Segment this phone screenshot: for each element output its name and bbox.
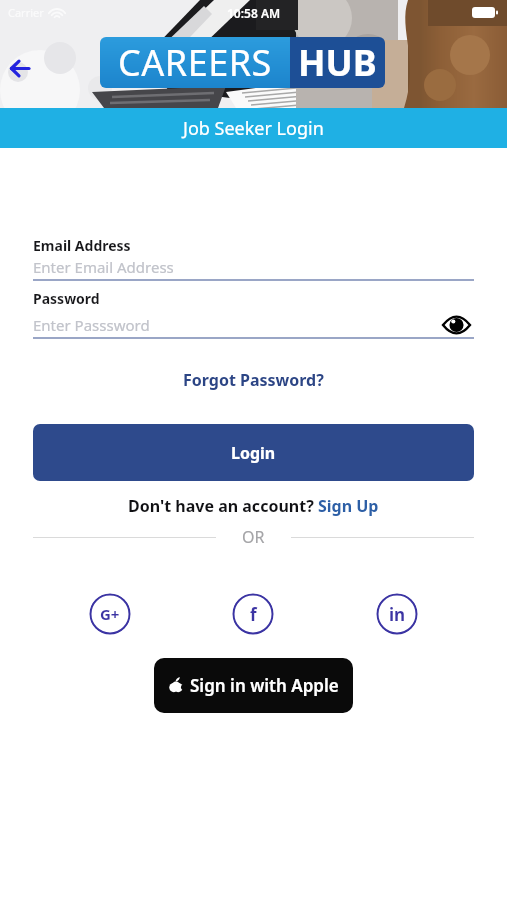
staticText: Enter Passsword <box>33 315 443 335</box>
button[interactable]: Sign Up <box>318 495 379 517</box>
button[interactable]: Login <box>33 424 474 481</box>
staticText: f <box>250 603 257 626</box>
staticText: Password <box>33 289 100 308</box>
staticText: OR <box>242 526 265 548</box>
button[interactable]: in <box>376 593 418 635</box>
staticText: Sign in with Apple <box>190 674 339 697</box>
staticText: Sign Up <box>318 495 379 517</box>
staticText: Carrier <box>8 5 44 20</box>
button[interactable]: Sign in with Apple <box>154 658 353 713</box>
staticText: 10:58 AM <box>227 5 281 21</box>
button[interactable] <box>2 50 38 86</box>
button[interactable]: f <box>232 593 274 635</box>
staticText: Job Seeker Login <box>183 116 324 141</box>
staticText: G+ <box>100 604 120 624</box>
staticText: CAREERS <box>118 38 272 87</box>
button[interactable]: G+ <box>89 593 131 635</box>
button[interactable]: Forgot Password? <box>183 369 324 391</box>
staticText: Enter Email Address <box>33 257 174 277</box>
button[interactable] <box>443 317 470 333</box>
staticText: HUB <box>298 38 377 87</box>
staticText: Login <box>231 442 276 464</box>
staticText: Forgot Password? <box>183 369 324 391</box>
staticText: in <box>389 603 406 626</box>
staticText: Don't have an account? <box>128 495 318 517</box>
staticText: Email Address <box>33 236 131 255</box>
